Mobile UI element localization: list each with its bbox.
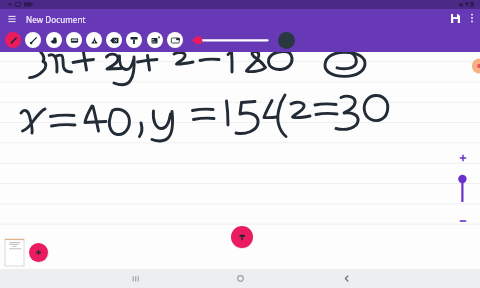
button[interactable]: Nib — [86, 32, 102, 48]
button[interactable]: Brush — [25, 32, 41, 48]
button[interactable]: Highlighter tool — [231, 226, 253, 248]
button[interactable]: Add page — [29, 243, 48, 262]
button[interactable]: Save — [447, 10, 463, 26]
button[interactable]: Home — [224, 269, 256, 288]
button[interactable]: Image — [147, 32, 163, 48]
button[interactable]: Colour — [278, 32, 295, 49]
button[interactable]: Pan — [46, 32, 62, 48]
button[interactable]: Zoom out — [455, 213, 471, 229]
button[interactable]: Page thumbnail — [5, 239, 24, 266]
staticText: New Document — [26, 14, 86, 25]
button[interactable]: Highlighter — [126, 32, 142, 48]
button[interactable]: Menu — [4, 11, 20, 27]
button[interactable]: Zoom in — [455, 150, 471, 166]
button[interactable]: Pen — [5, 32, 21, 48]
button[interactable]: Eraser — [66, 32, 82, 48]
button[interactable]: Crop — [167, 32, 183, 48]
button[interactable]: More options — [464, 10, 480, 26]
button[interactable]: Delete — [106, 32, 122, 48]
button[interactable]: Recents — [119, 269, 151, 288]
button[interactable]: Back — [330, 269, 362, 288]
